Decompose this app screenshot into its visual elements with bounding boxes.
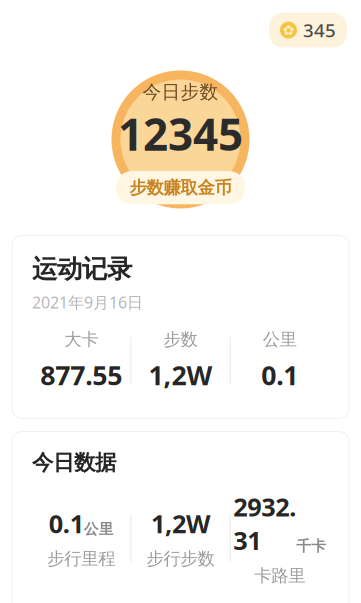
staticText: 步数赚取金币 <box>129 177 231 198</box>
staticText: 卡路里 <box>254 565 305 586</box>
staticText: 公里 <box>84 520 114 538</box>
staticText: 345 <box>303 18 336 42</box>
staticText: 877.55 <box>40 357 122 392</box>
staticText: 2021年9月16日 <box>32 292 143 313</box>
staticText: 步数 <box>163 329 197 350</box>
button[interactable]: 步数赚取金币 <box>115 171 245 204</box>
staticText: 今日数据 <box>32 449 116 476</box>
staticText: ✿ <box>283 22 294 38</box>
staticText: 步行步数 <box>146 548 214 569</box>
staticText: 公里 <box>263 329 297 350</box>
button[interactable]: ✿ <box>269 13 347 47</box>
staticText: 12345 <box>118 105 243 163</box>
staticText: 0.1 <box>49 507 84 540</box>
staticText: 步行里程 <box>47 548 115 569</box>
staticText: 大卡 <box>64 329 98 350</box>
staticText: 1,2W <box>151 507 210 540</box>
staticText: 千卡 <box>296 537 326 555</box>
staticText: 0.1 <box>261 357 298 392</box>
staticText: 今日步数 <box>142 81 218 103</box>
staticText: 1,2W <box>148 357 212 392</box>
staticText: 运动记录 <box>32 253 132 285</box>
staticText: 2932.31 <box>233 490 296 557</box>
